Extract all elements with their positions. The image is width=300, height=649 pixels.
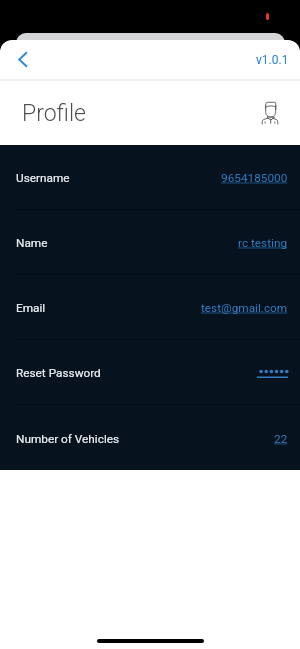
button[interactable]: Back [0, 40, 45, 79]
staticText: rc testing [238, 236, 288, 250]
button[interactable]: Username [0, 145, 300, 210]
staticText: Reset Password [16, 366, 101, 380]
button[interactable]: v1.0.1 [246, 45, 300, 75]
button[interactable]: Number of Vehicles [0, 405, 300, 470]
button[interactable]: Account [262, 102, 278, 124]
button[interactable]: Email [0, 275, 300, 340]
button[interactable]: Reset Password [0, 340, 300, 405]
staticText: Name [16, 236, 48, 250]
staticText: 22 [274, 432, 288, 446]
staticText: test@gmail.com [201, 301, 288, 315]
staticText: Email [16, 301, 46, 315]
staticText: v1.0.1 [256, 53, 289, 67]
button[interactable]: Name [0, 210, 300, 275]
staticText: Profile [22, 100, 86, 127]
staticText: Number of Vehicles [16, 432, 120, 446]
staticText: 9654185000 [221, 171, 288, 185]
staticText: Username [16, 171, 70, 185]
